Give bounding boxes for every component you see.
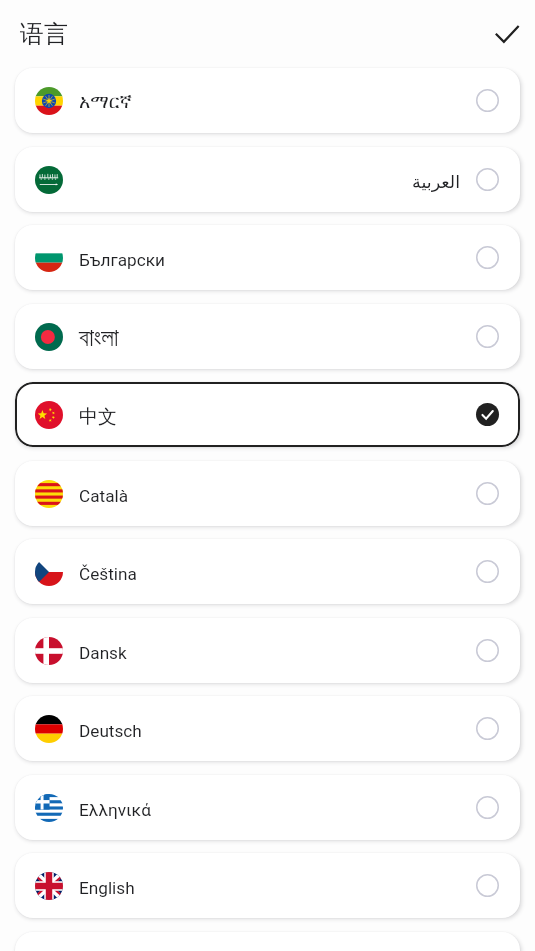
button[interactable]: Confirm [485, 12, 529, 56]
staticText: Dansk [79, 643, 460, 663]
staticText: Ελληνικά [79, 800, 460, 820]
staticText: Català [79, 486, 460, 506]
staticText: العربية [79, 172, 460, 192]
button[interactable]: 中文 [15, 382, 520, 447]
button[interactable]: Deutsch [15, 696, 520, 761]
button[interactable]: العربية [15, 147, 520, 212]
button[interactable]: বাংলা [15, 304, 520, 369]
staticText: አማርኛ [79, 93, 460, 112]
button[interactable]: Català [15, 461, 520, 526]
staticText: English [79, 878, 460, 898]
button[interactable]: Čeština [15, 539, 520, 604]
staticText: Čeština [79, 564, 460, 584]
staticText: বাংলা [79, 326, 460, 351]
button[interactable]: Български [15, 225, 520, 290]
staticText: 语言 [20, 19, 68, 49]
button[interactable]: Ελληνικά [15, 775, 520, 840]
button[interactable]: አማርኛ [15, 68, 520, 133]
staticText: 中文 [79, 405, 460, 429]
staticText: Български [79, 250, 460, 270]
button[interactable]: English [15, 853, 520, 918]
button[interactable]: Dansk [15, 618, 520, 683]
staticText: Deutsch [79, 721, 460, 741]
